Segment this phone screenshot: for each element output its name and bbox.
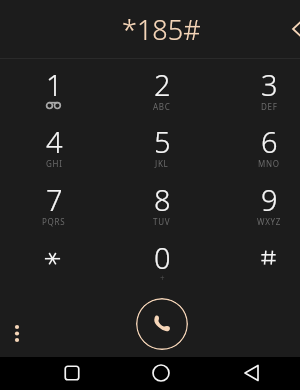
button[interactable] [6, 114, 102, 171]
staticText: 4 [46, 122, 63, 158]
button[interactable] [114, 172, 210, 229]
staticText: 5 [154, 122, 171, 158]
staticText: *185# [122, 11, 201, 48]
staticText: 0 [154, 238, 171, 274]
staticText: ABC [153, 101, 171, 112]
button[interactable]: Back [236, 357, 268, 389]
button[interactable] [6, 230, 102, 287]
staticText: + [160, 272, 165, 283]
staticText: 1 [46, 65, 63, 101]
button[interactable] [114, 230, 210, 287]
button[interactable]: Home [145, 357, 177, 389]
button[interactable]: More options [5, 321, 29, 345]
button[interactable] [221, 57, 300, 114]
button[interactable]: Call [136, 298, 188, 350]
button[interactable] [6, 57, 102, 114]
staticText: TUV [153, 216, 171, 227]
staticText: MNO [258, 158, 280, 169]
staticText: 7 [46, 180, 63, 216]
button[interactable] [6, 172, 102, 229]
button[interactable] [114, 114, 210, 171]
staticText: 3 [261, 65, 278, 101]
button[interactable] [221, 114, 300, 171]
staticText: DEF [261, 101, 278, 112]
staticText: 6 [261, 122, 278, 158]
staticText: 8 [154, 180, 171, 216]
staticText: JKL [155, 158, 169, 169]
staticText: 2 [154, 65, 171, 101]
button[interactable] [221, 172, 300, 229]
staticText: PQRS [42, 216, 66, 227]
button[interactable] [221, 230, 300, 287]
staticText: 9 [261, 180, 278, 216]
button[interactable]: Backspace [280, 12, 300, 46]
button[interactable] [114, 57, 210, 114]
staticText: GHI [46, 158, 63, 169]
button[interactable]: Recents [56, 357, 88, 389]
staticText: WXYZ [257, 216, 282, 227]
